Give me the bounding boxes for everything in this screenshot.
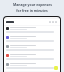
button[interactable] (4, 53, 60, 62)
staticText: for free in minutes (16, 8, 48, 13)
button[interactable] (4, 26, 60, 35)
button[interactable] (4, 44, 60, 53)
staticText: Manage your expenses (13, 2, 52, 7)
button[interactable]: Action (4, 19, 60, 25)
button[interactable]: Add expense (54, 66, 58, 70)
button[interactable] (4, 35, 60, 44)
button[interactable] (4, 62, 60, 71)
